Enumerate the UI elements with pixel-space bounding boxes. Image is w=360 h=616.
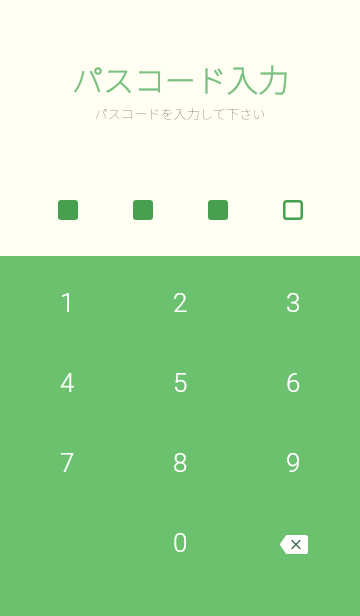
staticText: 7 — [60, 448, 75, 478]
staticText: 6 — [286, 368, 301, 398]
staticText: 2 — [173, 288, 188, 318]
button[interactable]: 2 — [124, 263, 237, 343]
button[interactable]: Delete — [237, 503, 350, 583]
button[interactable]: 9 — [237, 423, 350, 503]
button[interactable]: 6 — [237, 343, 350, 423]
button[interactable]: 1 — [10, 263, 124, 343]
button[interactable]: 8 — [124, 423, 237, 503]
staticText: 3 — [286, 288, 301, 318]
staticText: 9 — [286, 448, 301, 478]
staticText: 8 — [173, 448, 188, 478]
staticText: パスコードを入力して下さい — [94, 104, 266, 123]
other: Backspace — [279, 535, 308, 554]
button[interactable]: 5 — [124, 343, 237, 423]
staticText: 0 — [173, 528, 188, 558]
staticText: 1 — [60, 288, 75, 318]
staticText: 4 — [60, 368, 75, 398]
staticText: 5 — [173, 368, 188, 398]
button[interactable]: 4 — [10, 343, 124, 423]
button[interactable]: 0 — [124, 503, 237, 583]
staticText: パスコード入力 — [72, 56, 289, 101]
button[interactable]: 7 — [10, 423, 124, 503]
button[interactable]: 3 — [237, 263, 350, 343]
